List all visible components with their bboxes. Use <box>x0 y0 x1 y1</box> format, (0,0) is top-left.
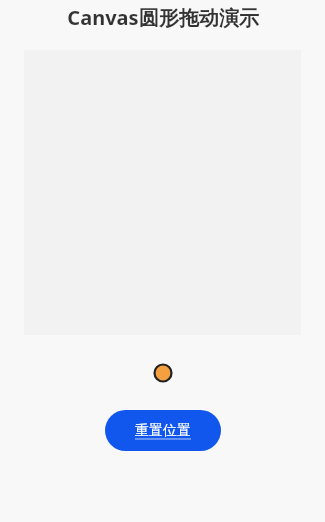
staticText: 重置位置 <box>135 422 191 440</box>
staticText: Canvas圆形拖动演示 <box>67 4 259 31</box>
button[interactable]: 重置位置 <box>105 410 221 451</box>
